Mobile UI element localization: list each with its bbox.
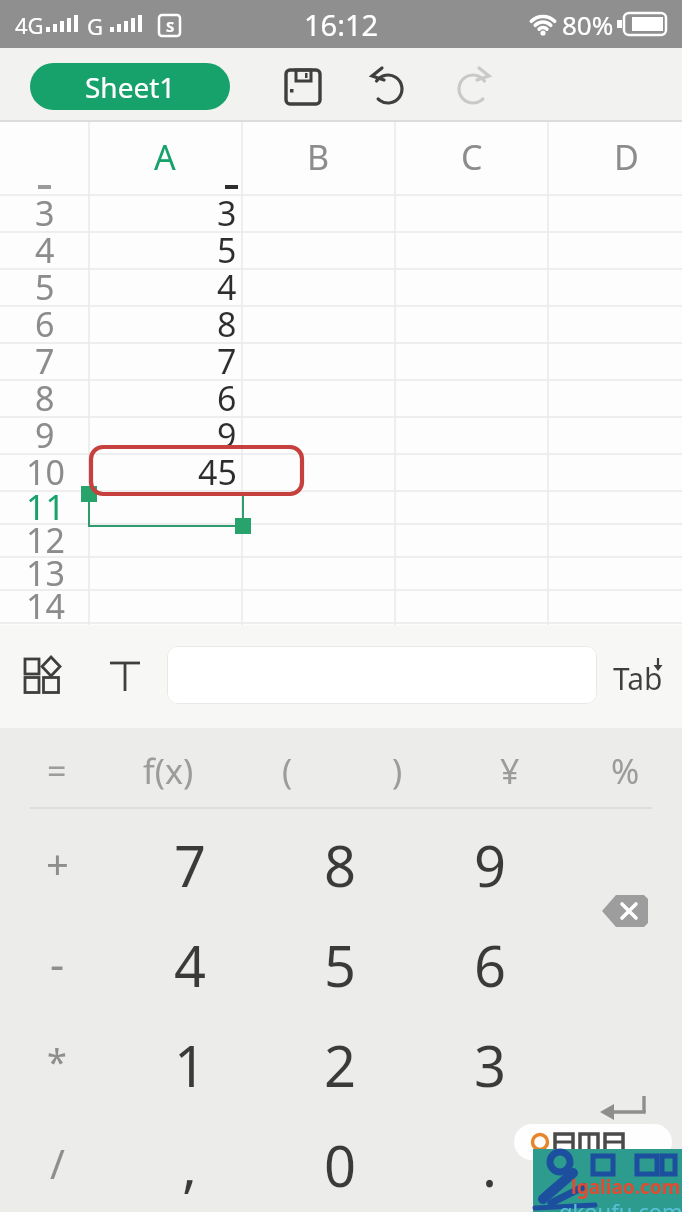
button[interactable]: 8	[270, 817, 410, 913]
button[interactable]: /	[12, 1118, 102, 1208]
button[interactable]: Sheet1	[30, 63, 230, 110]
button[interactable]: *	[12, 1016, 102, 1106]
staticText: 3	[217, 190, 237, 236]
staticText: 12	[26, 517, 65, 563]
staticText: f(x)	[143, 748, 194, 794]
staticText: .	[482, 1127, 498, 1203]
button[interactable]	[280, 64, 326, 110]
staticText: C	[461, 134, 483, 180]
staticText: *	[47, 1037, 67, 1086]
button[interactable]	[167, 646, 597, 704]
staticText: 5	[35, 264, 55, 310]
button[interactable]: .	[420, 1117, 560, 1212]
staticText: 16:12	[304, 5, 379, 44]
staticText: 45	[198, 449, 237, 495]
button[interactable]: f(x)	[113, 731, 223, 811]
staticText: 9	[35, 412, 55, 458]
button[interactable]: 4	[120, 917, 260, 1013]
staticText: 11	[26, 484, 65, 530]
staticText: 9	[217, 412, 237, 458]
staticText: qkoufu.com-	[559, 1196, 682, 1212]
button[interactable]: -	[12, 918, 102, 1008]
staticText: 7	[217, 338, 237, 384]
button[interactable]	[100, 650, 150, 700]
staticText: 7	[174, 827, 207, 903]
staticText: 14	[26, 583, 65, 629]
staticText: 6	[35, 301, 55, 347]
button[interactable]	[14, 647, 70, 703]
button[interactable]: +	[12, 818, 102, 908]
staticText: %	[611, 748, 640, 794]
staticText: 4	[174, 927, 207, 1003]
staticText: 13	[26, 550, 65, 596]
button[interactable]: 9	[420, 817, 560, 913]
button[interactable]: ,	[120, 1117, 260, 1212]
staticText: 7	[35, 338, 55, 384]
staticText: 5	[324, 927, 357, 1003]
staticText: 8	[324, 827, 357, 903]
staticText: 3	[35, 190, 55, 236]
button[interactable]: 3	[420, 1017, 560, 1113]
button[interactable]: 6	[420, 917, 560, 1013]
staticText: ¥	[500, 748, 520, 794]
staticText: 1	[174, 1027, 207, 1103]
staticText: )	[392, 748, 403, 794]
staticText: (	[282, 748, 293, 794]
staticText: 8	[35, 375, 55, 421]
staticText: 4	[35, 227, 55, 273]
staticText: A	[154, 134, 176, 180]
staticText: 4	[217, 264, 237, 310]
staticText: 10	[26, 449, 65, 495]
button[interactable]: 5	[270, 917, 410, 1013]
button[interactable]: =	[12, 731, 102, 811]
button[interactable]	[365, 64, 411, 110]
staticText: G	[87, 11, 104, 41]
staticText: 5	[217, 227, 237, 273]
staticText: D	[614, 134, 639, 180]
staticText: +	[46, 836, 69, 890]
button[interactable]: 7	[120, 817, 260, 913]
button[interactable]: ¥	[465, 731, 555, 811]
staticText: 0	[324, 1127, 357, 1203]
button[interactable]	[592, 885, 658, 937]
staticText: S	[166, 16, 175, 36]
button[interactable]: )	[352, 731, 442, 811]
button[interactable]: 1	[120, 1017, 260, 1113]
staticText: 2	[324, 1027, 357, 1103]
staticText: Sheet1	[85, 68, 176, 106]
staticText: lgaliao.com	[571, 1174, 681, 1200]
staticText: 6	[217, 375, 237, 421]
button[interactable]: %	[580, 731, 670, 811]
staticText: ,	[182, 1127, 198, 1203]
staticText: =	[47, 748, 67, 794]
staticText: -	[50, 933, 65, 993]
button[interactable]	[592, 1083, 658, 1135]
button[interactable]: 0	[270, 1117, 410, 1212]
staticText: 6	[474, 927, 507, 1003]
staticText: 9	[474, 827, 507, 903]
staticText: B	[307, 134, 330, 180]
button[interactable]: Tab	[605, 655, 675, 701]
staticText: 3	[474, 1027, 507, 1103]
button[interactable]: 2	[270, 1017, 410, 1113]
button[interactable]	[450, 64, 496, 110]
staticText: /	[50, 1136, 65, 1190]
staticText: 80%	[562, 7, 614, 42]
button[interactable]: (	[242, 731, 332, 811]
staticText: 4G	[15, 10, 44, 40]
staticText: Tab	[613, 658, 663, 699]
staticText: 8	[217, 301, 237, 347]
